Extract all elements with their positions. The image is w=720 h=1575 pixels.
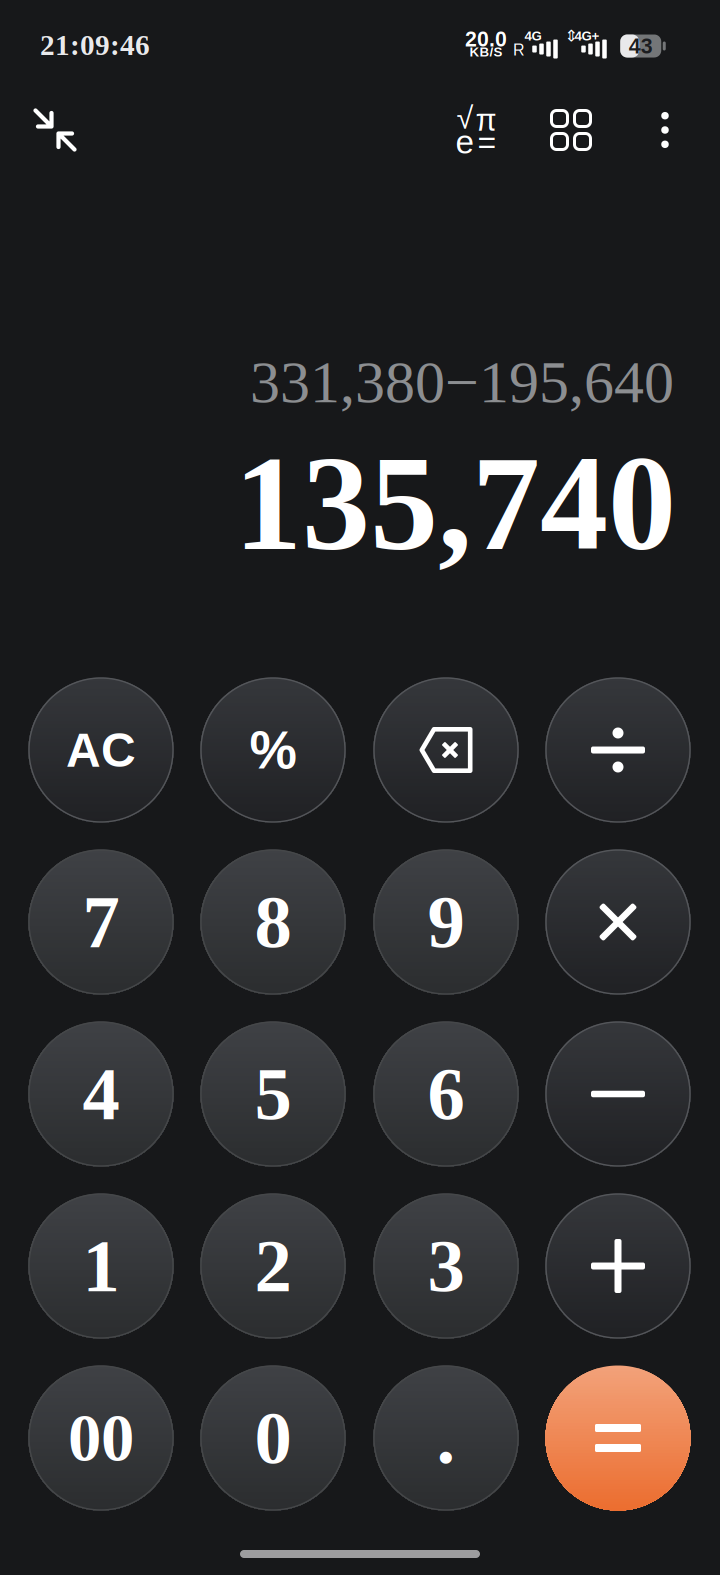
staticText: 21:09:46 <box>40 29 150 61</box>
button[interactable]: 1 <box>28 1193 173 1338</box>
staticText: ⇕ <box>564 27 577 45</box>
staticText: R <box>513 41 525 59</box>
staticText: . <box>436 1397 455 1479</box>
button[interactable]: Scientific mode <box>454 109 498 153</box>
button[interactable]: Double zero <box>28 1365 173 1510</box>
button[interactable]: Converter <box>549 108 593 152</box>
button[interactable]: 0 <box>200 1365 345 1510</box>
staticText: e <box>455 123 474 161</box>
staticText: 8 <box>254 881 291 963</box>
button[interactable]: Backspace <box>373 677 518 822</box>
button[interactable]: 9 <box>373 849 518 994</box>
staticText: % <box>249 720 296 780</box>
staticText: 4 <box>82 1053 119 1135</box>
staticText: 135,740 <box>234 428 676 578</box>
staticText: 4G+ <box>574 29 599 43</box>
staticText: 2 <box>254 1225 291 1307</box>
staticText: 7 <box>82 881 119 963</box>
staticText: KB/S <box>469 45 502 59</box>
staticText: 1 <box>82 1225 119 1307</box>
button[interactable]: 8 <box>200 849 345 994</box>
button[interactable]: 4 <box>28 1021 173 1166</box>
button[interactable]: 7 <box>28 849 173 994</box>
staticText: 6 <box>427 1053 464 1135</box>
staticText: 43 <box>629 34 653 58</box>
button[interactable]: 3 <box>373 1193 518 1338</box>
staticText: 00 <box>68 1401 134 1475</box>
button[interactable]: Decimal point <box>373 1365 518 1510</box>
staticText: 4G <box>524 29 541 43</box>
button[interactable]: Percent <box>200 677 345 822</box>
staticText: 3 <box>427 1225 464 1307</box>
staticText: AC <box>66 723 136 777</box>
button[interactable]: 5 <box>200 1021 345 1166</box>
button[interactable]: Collapse <box>33 108 77 152</box>
staticText: π <box>475 103 496 137</box>
button[interactable]: Multiply <box>545 849 690 994</box>
button[interactable]: Equals <box>545 1365 690 1510</box>
staticText: 0 <box>254 1397 291 1479</box>
staticText: 20.0 <box>465 27 507 51</box>
button[interactable]: 2 <box>200 1193 345 1338</box>
button[interactable]: Minus <box>545 1021 690 1166</box>
staticText: √ <box>456 101 473 135</box>
button[interactable]: 6 <box>373 1021 518 1166</box>
staticText: 9 <box>427 881 464 963</box>
button[interactable]: Divide <box>545 677 690 822</box>
button[interactable]: Plus <box>545 1193 690 1338</box>
staticText: 5 <box>254 1053 291 1135</box>
staticText: 331,380−195,640 <box>250 349 674 415</box>
button[interactable]: More options <box>643 108 687 152</box>
staticText: = <box>477 124 496 160</box>
button[interactable]: All clear <box>28 677 173 822</box>
